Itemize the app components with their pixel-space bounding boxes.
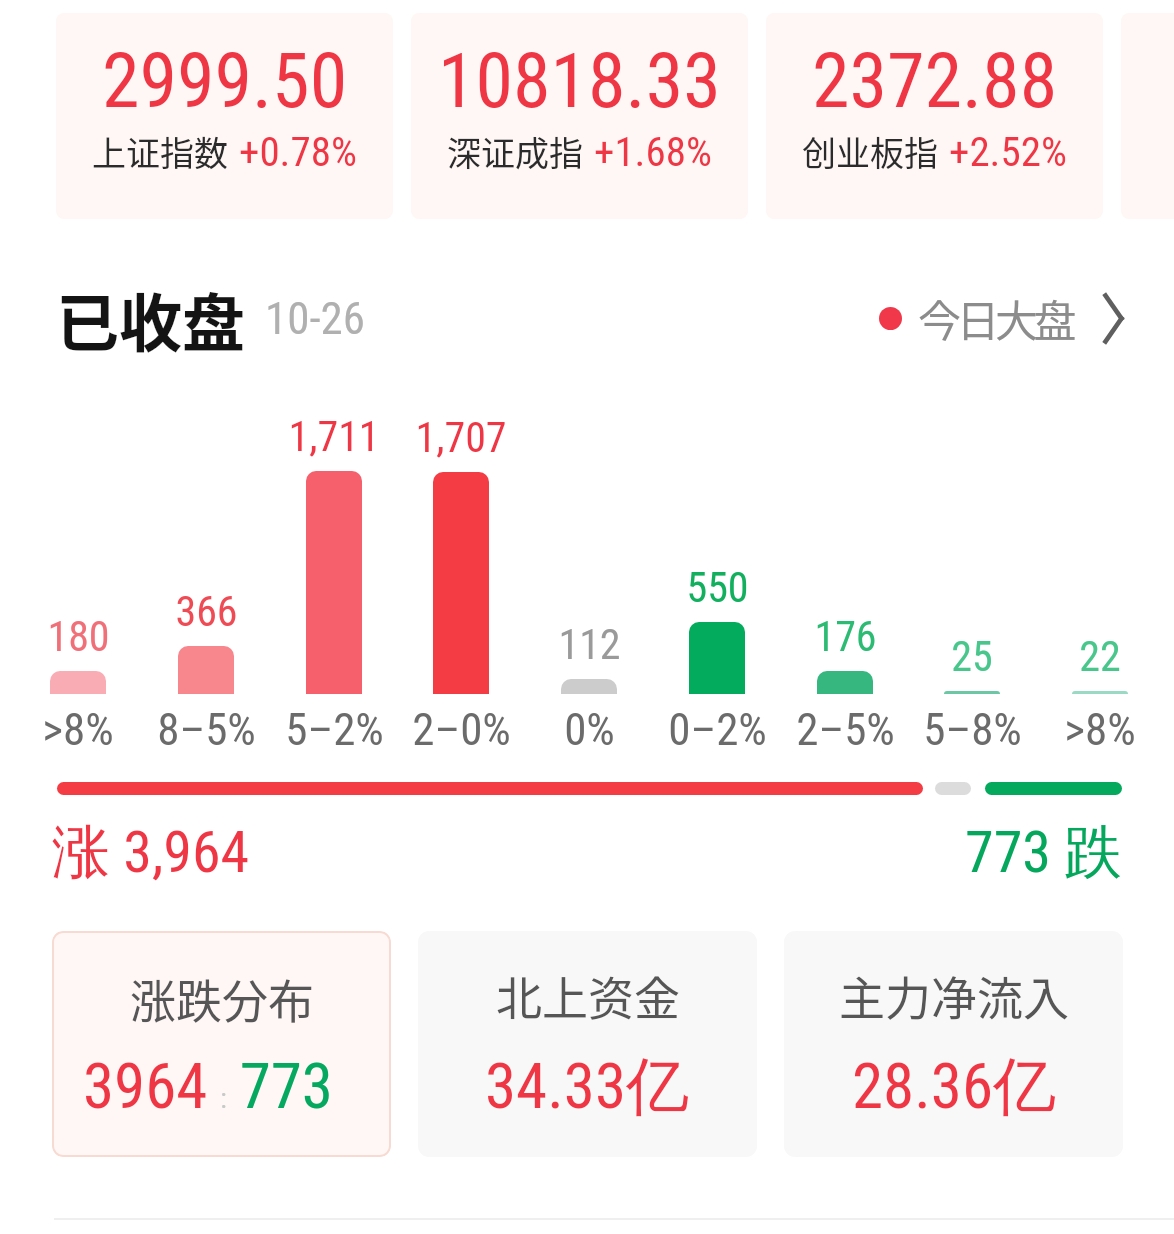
staticText: 176: [814, 612, 877, 661]
button[interactable]: 2372.88: [766, 13, 1103, 219]
staticText: 涨跌分布: [130, 965, 314, 1032]
staticText: >8%: [42, 703, 114, 756]
button[interactable]: 涨跌分布: [52, 931, 391, 1157]
button[interactable]: 今日大盘: [879, 270, 1123, 366]
staticText: 773 跌: [965, 816, 1123, 886]
staticText: 已收盘: [56, 273, 245, 364]
staticText: 180: [47, 612, 110, 661]
staticText: +1.68%: [594, 128, 712, 176]
button[interactable]: 10818.33: [411, 13, 748, 219]
staticText: 0%: [564, 703, 615, 756]
staticText: 28.36亿: [852, 1047, 1057, 1126]
staticText: 1,707: [415, 413, 507, 462]
staticText: 8–5%: [157, 703, 256, 756]
staticText: 3964 : 773: [83, 1050, 333, 1124]
staticText: 2372.88: [812, 36, 1058, 125]
staticText: 2–0%: [412, 703, 511, 756]
staticText: 上证指数: [92, 127, 228, 176]
other: Open today's market: [1104, 294, 1123, 343]
staticText: 北上资金: [496, 962, 680, 1029]
staticText: 5–8%: [923, 703, 1022, 756]
staticText: 创业板指: [802, 127, 938, 176]
staticText: 366: [175, 587, 238, 636]
staticText: 550: [686, 563, 749, 612]
staticText: 10818.33: [438, 36, 721, 125]
staticText: 34.33亿: [485, 1047, 690, 1126]
staticText: +2.52%: [949, 128, 1067, 176]
button[interactable]: 主力净流入: [784, 931, 1123, 1157]
staticText: 10-26: [265, 292, 366, 345]
staticText: 0–2%: [668, 703, 767, 756]
staticText: 5–2%: [285, 703, 384, 756]
button[interactable]: 北上资金: [418, 931, 757, 1157]
staticText: 2–5%: [796, 703, 895, 756]
staticText: 主力净流入: [839, 962, 1069, 1029]
staticText: 今日大盘: [918, 287, 1072, 349]
staticText: +0.78%: [239, 128, 357, 176]
button[interactable]: 2999.50: [56, 13, 393, 219]
staticText: 1,711: [288, 412, 380, 461]
staticText: >8%: [1064, 703, 1136, 756]
staticText: 深证成指: [447, 127, 583, 176]
staticText: 25: [951, 632, 993, 681]
staticText: 涨 3,964: [52, 816, 250, 886]
staticText: 112: [558, 620, 621, 669]
staticText: 22: [1079, 632, 1121, 681]
staticText: 2999.50: [102, 36, 348, 125]
